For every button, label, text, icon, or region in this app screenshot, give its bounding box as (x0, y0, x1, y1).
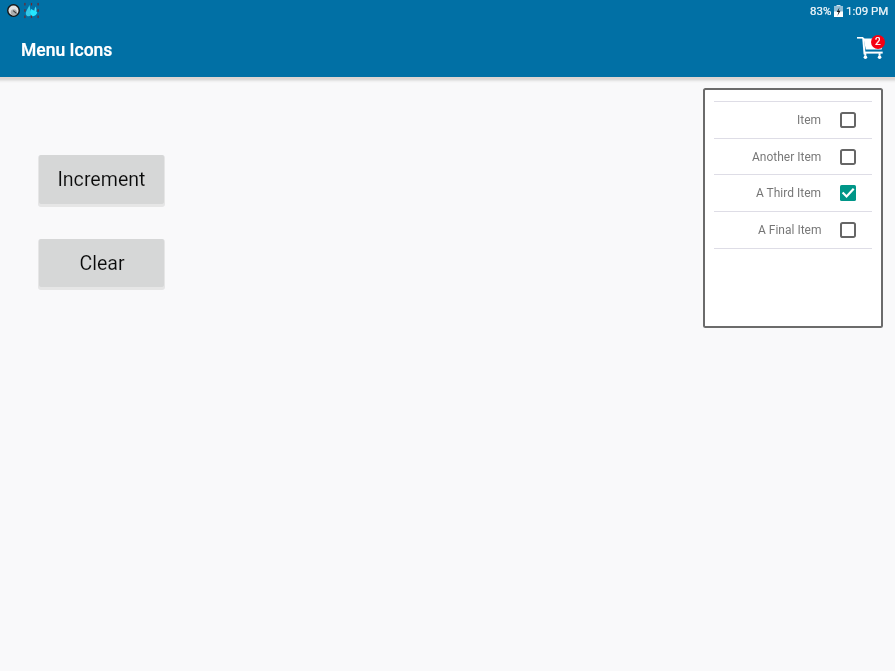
button[interactable]: Increment (39, 155, 164, 204)
staticText: Increment (57, 168, 146, 191)
staticText: Another Item (752, 150, 822, 164)
button[interactable]: A Final Item (703, 211, 883, 248)
button[interactable]: Item (703, 101, 883, 138)
staticText: A Final Item (758, 223, 822, 237)
button[interactable]: Clear (39, 239, 164, 287)
staticText: 1:09 PM (846, 4, 889, 17)
staticText: A Third Item (756, 186, 822, 200)
other: Status icon (7, 4, 20, 17)
button[interactable]: Shopping cart, 2 items (849, 29, 887, 67)
staticText: 83% (810, 4, 832, 17)
button[interactable]: Another Item (703, 138, 883, 175)
staticText: Item (797, 113, 822, 127)
staticText: Clear (79, 252, 125, 275)
button[interactable]: A Third Item (703, 174, 883, 211)
staticText: 2 (875, 36, 881, 48)
staticText: Menu Icons (21, 40, 113, 61)
